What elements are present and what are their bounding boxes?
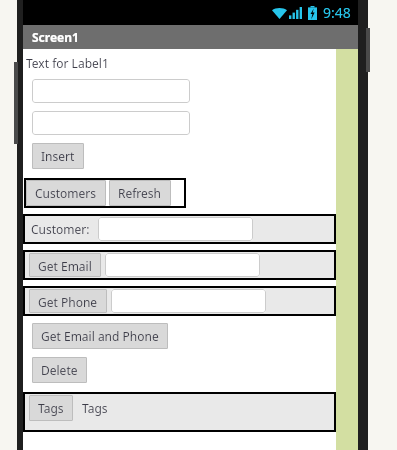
staticText: Tags	[82, 400, 108, 416]
button[interactable]: Text box	[111, 289, 266, 313]
button[interactable]: Text box	[32, 79, 190, 103]
staticText: Get Phone	[38, 294, 98, 308]
staticText: Delete	[41, 362, 78, 378]
staticText: Tags	[38, 400, 64, 416]
staticText: Insert	[41, 148, 75, 164]
button[interactable]: Delete	[32, 357, 87, 383]
button[interactable]: Get Email	[29, 253, 101, 277]
other: Wi-Fi	[272, 7, 287, 19]
staticText: Customers	[35, 185, 97, 201]
button[interactable]: Text box	[105, 253, 260, 277]
button[interactable]: Get Email and Phone	[32, 323, 168, 349]
staticText: Customer:	[31, 221, 90, 237]
other: Cellular signal	[289, 7, 302, 19]
button[interactable]: Customers	[26, 180, 106, 206]
staticText: 9:48	[323, 3, 351, 22]
button[interactable]: Get Phone	[29, 289, 107, 313]
other: Battery charging	[308, 6, 317, 20]
button[interactable]: Tags	[29, 395, 73, 421]
staticText: Refresh	[118, 185, 162, 201]
button[interactable]: Text box	[32, 111, 190, 135]
button[interactable]: Text box	[98, 217, 253, 241]
staticText: Get Email and Phone	[41, 328, 159, 344]
staticText: Text for Label1	[26, 55, 109, 71]
staticText: Get Email	[38, 258, 92, 272]
button[interactable]: Insert	[32, 143, 84, 169]
staticText: Screen1	[32, 29, 79, 45]
button[interactable]: Refresh	[109, 180, 171, 206]
